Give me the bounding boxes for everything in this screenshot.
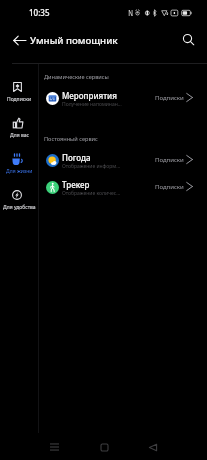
button[interactable]: Трекер bbox=[39, 173, 207, 200]
button[interactable]: Погода bbox=[39, 146, 207, 173]
staticText: Постоянный сервис bbox=[44, 135, 98, 143]
staticText: Подписки bbox=[155, 156, 184, 164]
staticText: Умный помощник bbox=[30, 34, 118, 47]
staticText: Подписки bbox=[155, 94, 184, 102]
staticText: Получение напоминания о заплан… bbox=[62, 101, 122, 108]
staticText: Мероприятия bbox=[62, 90, 117, 101]
staticText: Подписки bbox=[155, 183, 184, 191]
button[interactable]: Recents bbox=[39, 434, 69, 460]
staticText: Для жизни bbox=[6, 168, 33, 175]
staticText: Отображение количества шагов, к… bbox=[62, 190, 122, 197]
button[interactable]: Back bbox=[138, 434, 168, 460]
button[interactable]: Мероприятия bbox=[39, 84, 207, 111]
button[interactable]: Home bbox=[89, 434, 119, 460]
staticText: Для вас bbox=[10, 132, 29, 139]
button[interactable]: Back bbox=[6, 27, 32, 53]
staticText: Динамические сервисы bbox=[44, 73, 109, 81]
button[interactable]: Для удобства bbox=[0, 190, 38, 218]
staticText: Подписки bbox=[7, 96, 31, 103]
staticText: Трекер bbox=[62, 179, 90, 190]
staticText: Отображение информации о погод… bbox=[62, 163, 122, 170]
button[interactable]: Для жизни bbox=[0, 154, 38, 182]
button[interactable]: Подписки bbox=[0, 82, 38, 110]
button[interactable]: Для вас bbox=[0, 118, 38, 146]
staticText: Погода bbox=[62, 152, 91, 163]
staticText: Для удобства bbox=[3, 204, 36, 211]
staticText: 10:35 bbox=[29, 7, 50, 18]
button[interactable]: Search bbox=[176, 27, 201, 52]
